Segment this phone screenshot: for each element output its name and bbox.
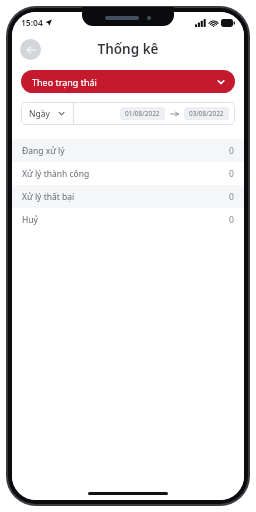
- staticText: 01/08/2022: [125, 109, 160, 118]
- staticText: Theo trạng thái: [32, 76, 97, 88]
- button[interactable]: Huỷ: [12, 208, 244, 231]
- staticText: Ngày: [29, 108, 50, 120]
- staticText: 03/08/2022: [189, 109, 224, 118]
- button[interactable]: Ngày: [21, 102, 73, 125]
- staticText: 0: [229, 214, 234, 226]
- button[interactable]: Đang xử lý: [12, 139, 244, 162]
- staticText: Đang xử lý: [22, 145, 65, 157]
- button[interactable]: Theo trạng thái: [21, 70, 235, 93]
- staticText: 0: [229, 168, 234, 180]
- staticText: 0: [229, 191, 234, 203]
- staticText: 15:04: [21, 17, 43, 29]
- button[interactable]: 03/08/2022: [184, 107, 229, 120]
- button[interactable]: Xử lý thành công: [12, 162, 244, 185]
- staticText: Thống kê: [97, 40, 159, 58]
- button[interactable]: 01/08/2022: [120, 107, 165, 120]
- button[interactable]: Xử lý thất bại: [12, 185, 244, 208]
- button[interactable]: Back: [17, 36, 43, 62]
- staticText: 0: [229, 145, 234, 157]
- staticText: Xử lý thất bại: [22, 191, 75, 203]
- staticText: Xử lý thành công: [22, 168, 90, 180]
- staticText: Huỷ: [22, 214, 38, 226]
